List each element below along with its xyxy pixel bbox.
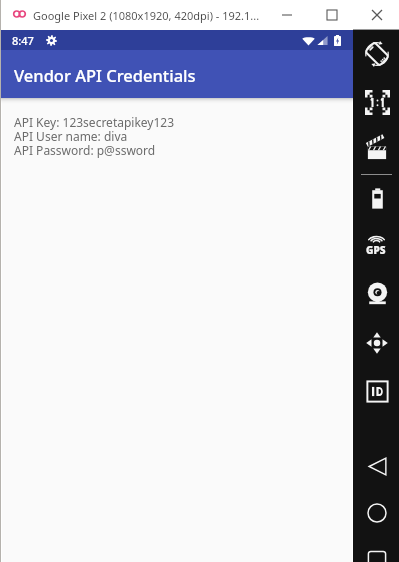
button[interactable]: Maximize (309, 0, 354, 30)
button[interactable]: Vendor API Credentials (1, 50, 353, 98)
button[interactable]: Minimize (264, 0, 309, 30)
staticText: Vendor API Credentials (14, 64, 196, 86)
button[interactable]: Home (353, 490, 399, 536)
staticText: GPS (366, 243, 386, 257)
button[interactable]: Rotate (353, 31, 399, 77)
button[interactable]: Zoom 1 to 1 (353, 79, 399, 125)
button[interactable]: Device ID (353, 368, 399, 414)
button[interactable]: Record screen (353, 126, 399, 172)
staticText: Google Pixel 2 (1080x1920, 420dpi) - 192… (33, 8, 260, 23)
button[interactable]: Recent apps (353, 537, 399, 562)
button[interactable]: Virtual sensors (353, 320, 399, 366)
button[interactable]: Back (353, 443, 399, 489)
button[interactable]: Battery (353, 175, 399, 221)
button[interactable]: Camera (353, 271, 399, 317)
staticText: 8:47 (12, 33, 34, 48)
button[interactable]: GPS location (353, 223, 399, 269)
button[interactable]: Close (354, 0, 399, 30)
staticText: API Key: 123secretapikey123 API User nam… (14, 114, 175, 158)
